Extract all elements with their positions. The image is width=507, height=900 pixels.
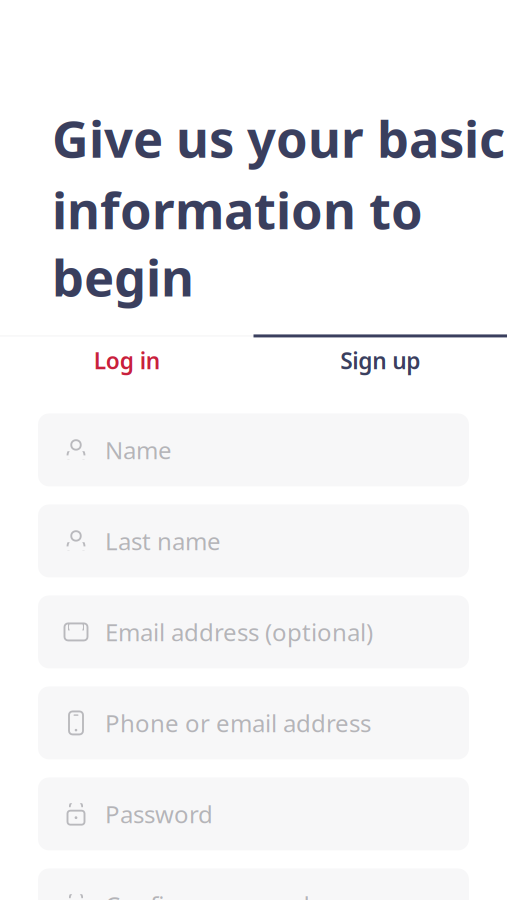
- button[interactable]: Phone or email address: [38, 686, 469, 759]
- staticText: Password: [105, 798, 213, 830]
- button[interactable]: Name: [38, 413, 469, 486]
- staticText: Sign up: [340, 345, 420, 375]
- staticText: Email address (optional): [105, 616, 373, 648]
- button[interactable]: Password: [38, 777, 469, 850]
- staticText: Last name: [105, 525, 221, 557]
- button[interactable]: Sign up: [253, 337, 507, 383]
- staticText: information to begin: [52, 176, 423, 310]
- staticText: Name: [105, 434, 172, 466]
- button[interactable]: Confirm password: [38, 868, 469, 900]
- button[interactable]: Email address (optional): [38, 595, 469, 668]
- staticText: Phone or email address: [105, 707, 371, 739]
- staticText: Confirm password: [105, 889, 310, 900]
- staticText: Log in: [94, 345, 160, 375]
- button[interactable]: Last name: [38, 504, 469, 577]
- staticText: Give us your basic: [52, 105, 505, 172]
- button[interactable]: Log in: [0, 337, 253, 383]
